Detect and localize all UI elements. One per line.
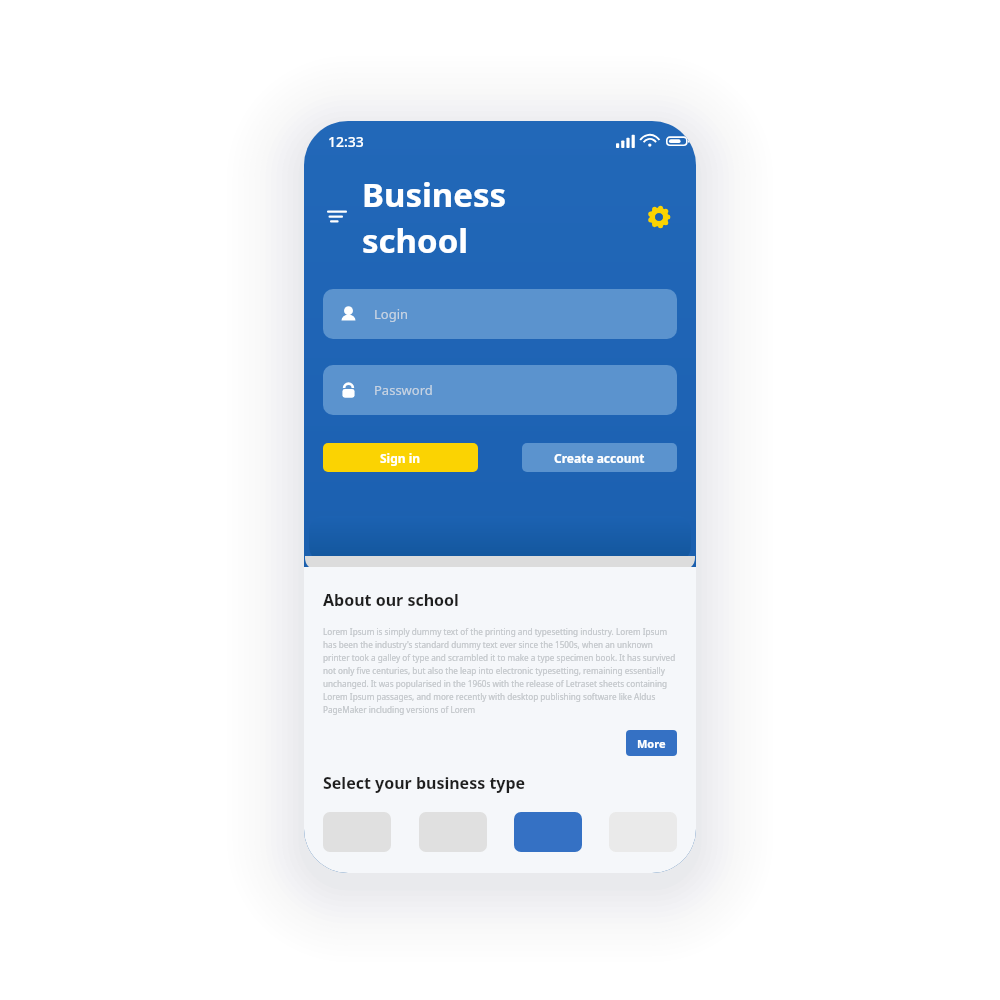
button[interactable]: Login: [323, 289, 677, 339]
button[interactable]: Menu: [320, 200, 354, 234]
staticText: Create account: [554, 450, 645, 466]
staticText: Login: [374, 305, 409, 323]
button[interactable]: Business type: [323, 812, 391, 852]
staticText: 12:33: [328, 132, 364, 151]
staticText: school: [362, 218, 469, 263]
button[interactable]: Settings: [642, 200, 676, 234]
button[interactable]: Business type: [514, 812, 582, 852]
staticText: Password: [374, 381, 433, 399]
staticText: Sign in: [380, 450, 421, 466]
button[interactable]: Password: [323, 365, 677, 415]
staticText: More: [637, 736, 666, 751]
button[interactable]: Create account: [522, 443, 677, 472]
button[interactable]: Sign in: [323, 443, 478, 472]
button[interactable]: Card: [309, 516, 691, 564]
staticText: Business: [362, 172, 507, 217]
staticText: About our school: [323, 589, 459, 611]
button[interactable]: More: [626, 730, 677, 756]
staticText: Select your business type: [323, 772, 526, 794]
button[interactable]: Business type: [419, 812, 487, 852]
staticText: Lorem Ipsum is simply dummy text of the …: [323, 626, 677, 716]
